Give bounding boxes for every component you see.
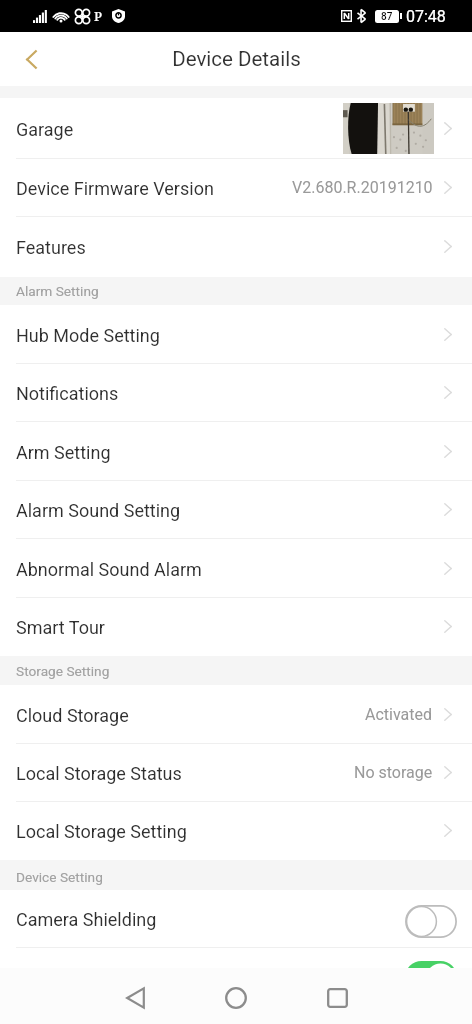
staticText: V2.680.R.20191210 [292,178,433,197]
button[interactable]: Back [111,974,159,1022]
button[interactable]: Back [9,37,53,81]
button[interactable]: Arm Setting [0,422,472,481]
staticText: Notifications [16,383,119,404]
staticText: Smart Tour [16,617,105,638]
staticText: P [94,7,102,25]
staticText: Cloud Storage [16,705,129,726]
staticText: Alarm Sound Setting [16,500,181,521]
button[interactable]: Camera Shielding [0,890,472,948]
staticText: Local Storage Status [16,763,182,784]
staticText: Camera Shielding [16,909,157,930]
staticText: Alarm Setting [16,283,99,299]
staticText: Device Firmware Version [16,178,214,199]
staticText: Device Setting [16,869,103,885]
staticText: Hub Mode Setting [16,325,160,346]
button[interactable]: Local Storage Setting [0,802,472,860]
button[interactable]: Local Storage Status [0,744,472,802]
staticText: Local Storage Setting [16,821,187,842]
button[interactable]: Home [212,974,260,1022]
button[interactable]: Recents [313,974,361,1022]
button[interactable]: Cloud Storage [0,685,472,744]
staticText: Motion Detection [16,968,154,989]
button[interactable]: Hub Mode Setting [0,305,472,364]
button[interactable]: Features [0,217,472,277]
staticText: Abnormal Sound Alarm [16,559,202,580]
button[interactable]: Motion Detection [0,948,472,1006]
staticText: Features [16,237,86,258]
staticText: No storage [354,763,433,782]
button[interactable]: Alarm Sound Setting [0,481,472,539]
staticText: Device Details [172,47,301,71]
button[interactable]: Device Firmware Version [0,159,472,217]
staticText: Activated [365,705,433,724]
staticText: 07:48 [406,7,446,26]
staticText: Garage [16,119,74,140]
staticText: Arm Setting [16,442,111,463]
button[interactable]: Smart Tour [0,598,472,656]
staticText: 87 [381,11,393,23]
staticText: Storage Setting [16,663,110,679]
button[interactable]: Notifications [0,364,472,422]
button[interactable]: Abnormal Sound Alarm [0,539,472,598]
button[interactable]: Garage [0,98,472,159]
